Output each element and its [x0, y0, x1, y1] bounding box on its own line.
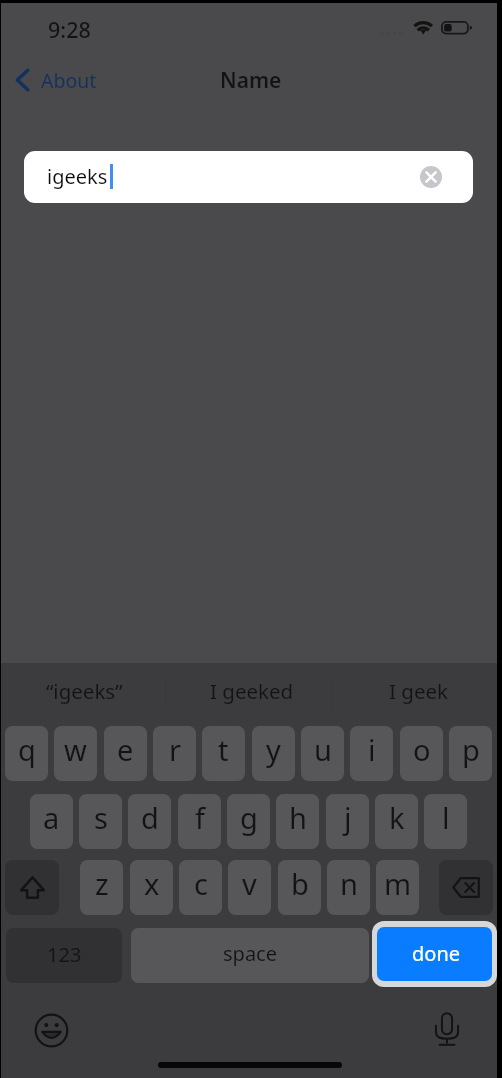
staticText: k — [389, 798, 405, 837]
staticText: q — [18, 730, 36, 769]
staticText: i — [368, 730, 376, 769]
button[interactable]: About — [7, 62, 105, 98]
button[interactable]: i — [350, 726, 393, 781]
staticText: About — [41, 67, 97, 94]
button[interactable]: m — [376, 860, 419, 915]
staticText: e — [117, 730, 134, 769]
button[interactable]: Emoji keyboard — [34, 1013, 69, 1048]
button[interactable]: I geek — [335, 664, 502, 720]
staticText: 9:28 — [48, 15, 91, 44]
button[interactable]: x — [130, 860, 173, 915]
staticText: b — [291, 864, 309, 903]
staticText: d — [141, 798, 159, 837]
button[interactable]: v — [228, 860, 271, 915]
button[interactable]: w — [54, 726, 97, 781]
button[interactable]: b — [278, 860, 321, 915]
button[interactable]: z — [80, 860, 123, 915]
button[interactable]: Shift — [5, 860, 59, 915]
staticText: g — [240, 798, 258, 837]
staticText: c — [194, 864, 208, 903]
staticText: j — [344, 798, 352, 837]
staticText: u — [314, 730, 332, 769]
staticText: I geek — [389, 677, 448, 705]
staticText: l — [442, 798, 450, 837]
button[interactable]: p — [449, 726, 492, 781]
button[interactable]: a — [30, 794, 73, 849]
staticText: igeeks — [47, 163, 108, 190]
button[interactable]: e — [104, 726, 147, 781]
staticText: f — [195, 798, 205, 837]
button[interactable]: r — [153, 726, 196, 781]
staticText: v — [242, 864, 257, 903]
staticText: s — [94, 798, 108, 837]
button[interactable]: 123 — [6, 928, 122, 983]
staticText: x — [144, 864, 160, 903]
button[interactable]: y — [252, 726, 295, 781]
button[interactable]: k — [375, 794, 418, 849]
staticText: p — [462, 730, 480, 769]
staticText: done — [412, 940, 461, 967]
staticText: I geeked — [210, 677, 294, 705]
button[interactable]: d — [128, 794, 171, 849]
staticText: n — [340, 864, 358, 903]
staticText: m — [384, 864, 412, 903]
button[interactable]: s — [79, 794, 122, 849]
button[interactable]: n — [327, 860, 370, 915]
button[interactable]: u — [301, 726, 344, 781]
staticText: 123 — [47, 941, 82, 968]
staticText: Name — [220, 66, 282, 95]
staticText: o — [413, 730, 431, 769]
staticText: t — [218, 730, 229, 769]
staticText: h — [289, 798, 307, 837]
button[interactable]: Backspace — [439, 860, 493, 915]
button[interactable]: f — [178, 794, 221, 849]
button[interactable]: Dictation — [431, 1010, 463, 1048]
button[interactable]: c — [179, 860, 222, 915]
button[interactable]: t — [202, 726, 245, 781]
staticText: “igeeks” — [46, 677, 123, 705]
button[interactable]: done — [377, 927, 492, 981]
staticText: r — [169, 730, 181, 769]
button[interactable]: Clear text — [420, 166, 442, 188]
staticText: a — [43, 798, 60, 837]
button[interactable]: “igeeks” — [0, 664, 168, 720]
staticText: z — [95, 864, 109, 903]
staticText: space — [223, 940, 277, 967]
button[interactable]: igeeks — [24, 151, 473, 203]
button[interactable]: g — [227, 794, 270, 849]
button[interactable]: space — [131, 928, 369, 983]
button[interactable]: j — [326, 794, 369, 849]
button[interactable]: o — [400, 726, 443, 781]
button[interactable]: l — [424, 794, 467, 849]
button[interactable]: I geeked — [168, 664, 335, 720]
button[interactable]: q — [5, 726, 48, 781]
button[interactable]: h — [276, 794, 319, 849]
staticText: y — [266, 730, 281, 769]
staticText: w — [64, 730, 87, 769]
